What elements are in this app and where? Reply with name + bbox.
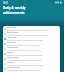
staticText: Hydrated xyxy=(7,41,16,44)
staticText: Consistency xyxy=(7,46,19,49)
staticText: On fire xyxy=(7,51,14,54)
button[interactable]: Night owl xyxy=(3,36,60,41)
staticText: Mindful xyxy=(7,61,15,64)
staticText: Ten minutes of meditation every morning xyxy=(7,64,43,66)
staticText: Run forty two kilometres over this week xyxy=(7,59,42,61)
staticText: Walk ten thousand steps in a single day … xyxy=(7,34,47,36)
staticText: Complete a workout before 8am in the mor… xyxy=(7,29,49,31)
button[interactable]: Hydrated xyxy=(3,41,60,46)
staticText: Work out three days in a row this week xyxy=(7,49,41,51)
staticText: Early bird xyxy=(7,26,17,29)
staticText: Weekend pro xyxy=(7,66,20,69)
staticText: Two workouts over a single weekend xyxy=(7,69,39,71)
button[interactable]: Weekend pro xyxy=(3,66,60,71)
staticText: Burn five hundred calories in one sessio… xyxy=(7,54,43,56)
staticText: 9:41 xyxy=(3,1,9,5)
button[interactable]: Mindful xyxy=(3,61,60,66)
button[interactable]: Step master xyxy=(3,31,60,36)
staticText: Track your sleep for seven nights in a r… xyxy=(7,39,43,41)
staticText: Marathoner xyxy=(7,56,19,59)
button[interactable]: Explorer xyxy=(3,71,60,72)
button[interactable]: On fire xyxy=(3,51,60,56)
button[interactable]: Marathoner xyxy=(3,56,60,61)
staticText: Drink eight glasses of water every day xyxy=(7,44,40,46)
button[interactable]: Consistency xyxy=(3,46,60,51)
staticText: Daily & weekly achievements xyxy=(3,6,26,15)
button[interactable]: Early bird xyxy=(3,26,60,31)
staticText: Step master xyxy=(7,31,19,34)
staticText: Night owl xyxy=(7,36,17,39)
